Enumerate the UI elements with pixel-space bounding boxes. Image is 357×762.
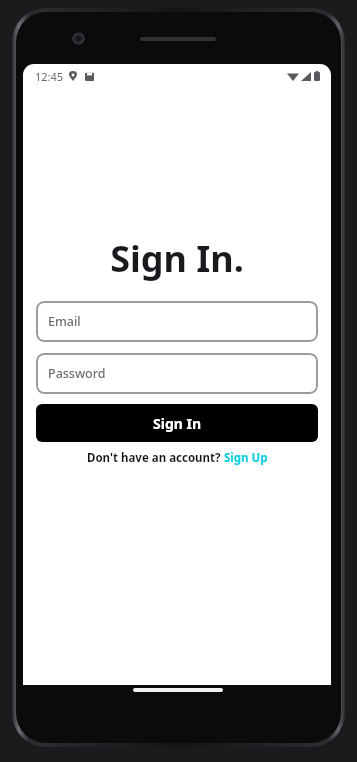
button[interactable]: Email xyxy=(36,301,318,342)
other: Location xyxy=(68,71,78,81)
other: Cellular signal xyxy=(301,72,311,81)
other: Battery xyxy=(314,71,320,81)
button[interactable]: Sign Up xyxy=(224,450,268,466)
staticText: Password xyxy=(48,365,106,382)
staticText: Email xyxy=(48,313,81,330)
staticText: Sign In xyxy=(153,414,202,433)
other: Storage xyxy=(85,72,94,81)
button[interactable]: Sign In xyxy=(36,404,318,442)
button[interactable]: Password xyxy=(36,353,318,394)
other: Wi-Fi xyxy=(287,72,299,81)
staticText: 12:45 xyxy=(35,69,64,84)
staticText: Sign In. xyxy=(110,234,244,283)
staticText: Sign Up xyxy=(224,450,268,466)
staticText: Don't have an account? xyxy=(87,450,224,466)
